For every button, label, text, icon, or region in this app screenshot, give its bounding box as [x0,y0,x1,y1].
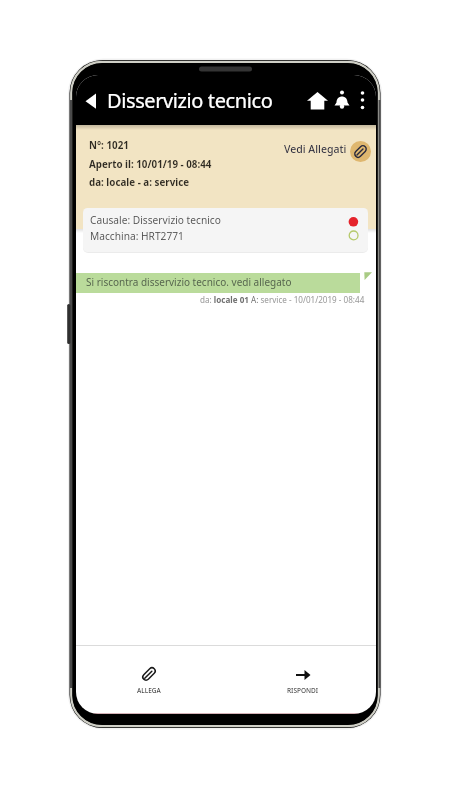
button[interactable]: ALLEGA [120,658,178,700]
staticText: RISPONDI [287,686,319,695]
staticText: ALLEGA [137,686,161,695]
button[interactable] [80,88,102,114]
button[interactable] [305,89,330,112]
button[interactable] [333,90,351,111]
staticText: Macchina: HRT2771 [90,229,184,243]
button[interactable] [350,141,371,162]
staticText: da: locale - a: service [89,176,190,189]
staticText: Causale: Disservizio tecnico [90,213,221,227]
staticText: Disservizio tecnico [107,87,273,114]
button[interactable] [356,89,369,113]
button[interactable]: Si riscontra disservizio tecnico. vedi a… [76,273,360,293]
staticText: N°: 1021 [89,139,129,152]
staticText: Vedi Allegati [284,142,347,156]
button[interactable]: RISPONDI [274,658,332,700]
button[interactable]: Vedi Allegati [236,142,347,156]
staticText: Si riscontra disservizio tecnico. vedi a… [86,275,292,289]
staticText: Aperto il: 10/01/19 - 08:44 [89,158,212,171]
button[interactable]: Causale: Disservizio tecnico [83,208,368,252]
staticText: da: locale 01 A: service - 10/01/2019 - … [200,294,365,305]
